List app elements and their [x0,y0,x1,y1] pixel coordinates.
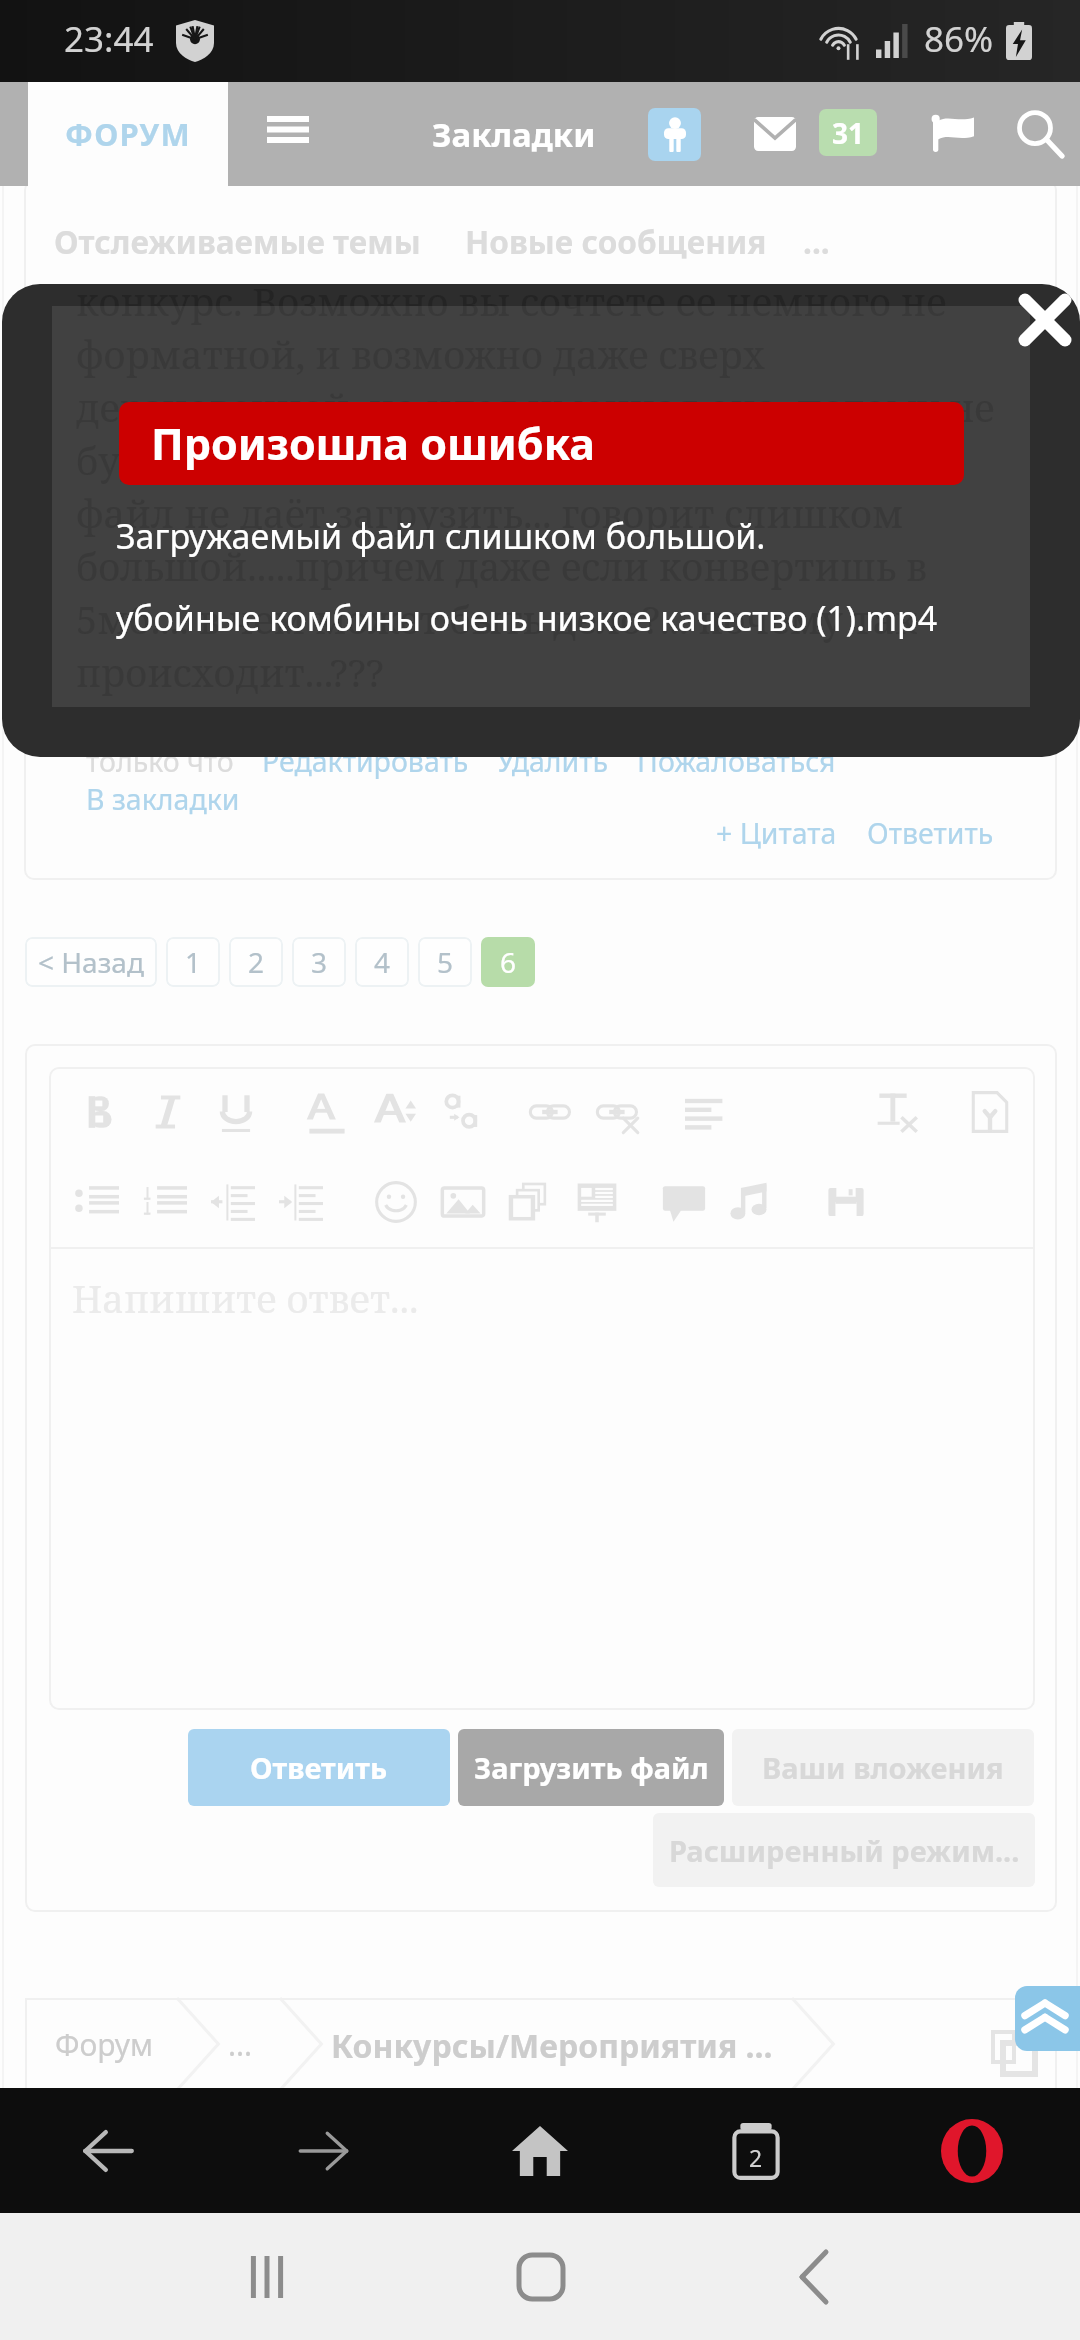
staticText: 5мб.... в чем может быть дело?... почему… [76,593,917,645]
button[interactable]: Insert image [429,1168,497,1236]
button[interactable]: Opera menu [864,2088,1080,2213]
button[interactable]: Draft [956,1078,1024,1146]
button[interactable]: 6 [481,937,535,987]
staticText: + Цитата [716,814,837,853]
staticText: ... [803,220,830,263]
staticText: ... [228,2024,253,2065]
button[interactable]: Alignment [673,1078,741,1146]
button[interactable]: Menu [246,77,330,181]
button[interactable]: Bold [67,1078,135,1146]
staticText: файл не даёт загрузить... говорит слишко… [76,487,904,539]
button[interactable]: Italic [134,1078,202,1146]
staticText: 1 [185,943,202,981]
button[interactable]: 3 [292,937,346,987]
button[interactable]: Конкурсы/Мероприятия ... [331,2024,773,2068]
button[interactable]: Scroll to top [1015,1986,1080,2051]
button[interactable]: 2 [229,937,283,987]
button[interactable]: Font size [360,1078,428,1146]
button[interactable]: 5 [418,937,472,987]
staticText: только что [86,742,234,781]
staticText: Конкурсы/Мероприятия ... [331,2024,773,2068]
button[interactable]: Отслеживаемые темы [54,220,421,263]
button[interactable]: Ваши вложения [732,1729,1034,1806]
staticText: большой.....причем даже если конвертишь … [76,540,928,592]
staticText: < Назад [38,943,144,981]
button[interactable]: Tabs [648,2088,864,2213]
button[interactable]: Insert link [517,1078,585,1146]
button[interactable]: Home [404,2213,677,2340]
button[interactable]: Back [0,2088,216,2213]
button[interactable]: Insert audio [714,1168,782,1236]
staticText: конкурс. Возможно вы сочтете ее немного … [76,284,947,327]
staticText: буду против, если организаторы решат что [76,434,913,486]
button[interactable]: Recents [130,2213,404,2340]
staticText: 31 [832,114,865,152]
button[interactable]: Back [677,2213,950,2340]
staticText: 5 [437,943,454,981]
button[interactable]: Пожаловаться [637,742,836,781]
staticText: 23:44 [64,15,154,63]
button[interactable]: Insert media [495,1168,563,1236]
staticText: Отслеживаемые темы [54,220,421,263]
button[interactable]: Save draft [812,1168,880,1236]
staticText: файл не даёт загрузить... говорит слишко… [76,487,904,539]
button[interactable]: Underline [202,1078,270,1146]
button[interactable]: ФОРУМ [28,82,228,186]
button[interactable]: Remove formatting [863,1078,931,1146]
button[interactable]: Numbered list [131,1168,199,1236]
button[interactable]: Indent [267,1168,335,1236]
button[interactable]: В закладки [86,780,240,819]
button[interactable]: Новые сообщения [465,220,767,263]
button[interactable]: Alerts [918,99,988,169]
button[interactable]: Forward [216,2088,432,2213]
staticText: конкурс. Возможно вы сочтете ее немного … [76,275,947,327]
button[interactable]: Account [636,96,712,172]
staticText: Загружаемый файл слишком большой. [116,513,766,559]
button[interactable]: Insert table [563,1168,631,1236]
button[interactable]: Ответить [867,814,994,853]
button[interactable]: 31 [819,109,877,156]
button[interactable]: Insert quote [650,1168,718,1236]
staticText: дерзновенной, но идея именная она, потом… [76,381,995,433]
staticText: большой.....причем даже если конвертишь … [76,540,928,592]
staticText: 2 [248,943,265,981]
staticText: 86% [924,15,994,63]
button[interactable]: Редактировать [262,742,469,781]
button[interactable]: Закладки [400,82,628,186]
staticText: 3 [311,943,328,981]
button[interactable]: + Цитата [716,814,837,853]
button[interactable]: 4 [355,937,409,987]
button[interactable]: Smilies [362,1168,430,1236]
staticText: Ответить [867,814,994,853]
button[interactable]: Home [432,2088,648,2213]
staticText: Расширенный режим... [669,1831,1020,1870]
staticText: В закладки [86,780,240,819]
staticText: Закладки [432,112,596,157]
button[interactable]: Удалить [497,742,609,781]
staticText: Ответить [250,1748,388,1787]
button[interactable]: Ответить [188,1729,450,1806]
button[interactable]: Загрузить файл [458,1729,724,1806]
staticText: Форум [55,2024,153,2065]
button[interactable]: Remove link [584,1078,652,1146]
staticText: 5мб.... в чем может быть дело?... почему… [76,593,917,645]
button[interactable]: Форум [55,2024,153,2065]
staticText: Произошла ошибка [151,414,595,473]
staticText: Удалить [497,742,609,781]
button[interactable]: 1 [166,937,220,987]
button[interactable]: Close [997,284,1080,368]
button[interactable]: Bullet list [63,1168,131,1236]
button[interactable]: Расширенный режим... [653,1813,1035,1887]
button[interactable]: Outdent [199,1168,267,1236]
staticText: Новые сообщения [465,220,767,263]
button[interactable]: Font [429,1078,497,1146]
staticText: дерзновенной, но идея именная она, потом… [76,381,995,433]
button[interactable]: < Назад [25,937,157,987]
button[interactable]: ... [803,220,830,263]
button[interactable]: Search [1005,99,1075,169]
staticText: Редактировать [262,742,469,781]
button[interactable]: Text colour [293,1078,361,1146]
button[interactable]: Inbox [738,97,812,171]
